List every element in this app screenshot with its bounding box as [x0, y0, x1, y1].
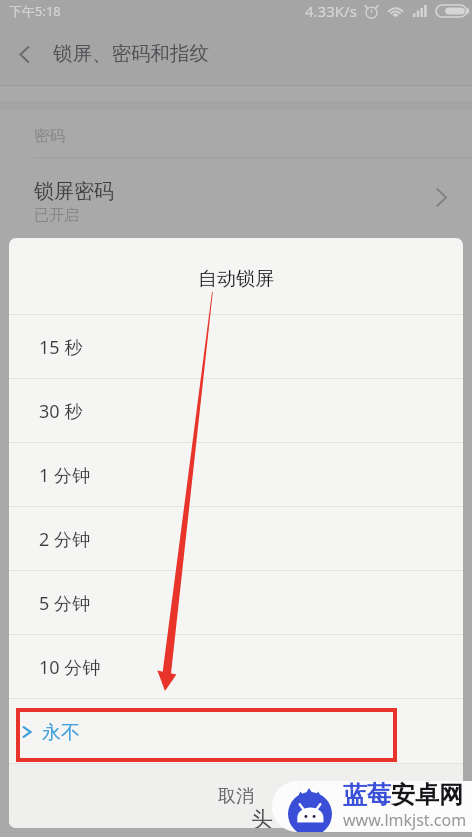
- staticText: www.lmkjst.com: [343, 809, 467, 830]
- staticText: 30 秒: [39, 399, 83, 424]
- staticText: 永不: [42, 721, 80, 745]
- staticText: 1 分钟: [39, 463, 90, 488]
- button[interactable]: 2 分钟: [9, 507, 463, 570]
- staticText: 自动锁屏: [198, 267, 274, 291]
- button[interactable]: 1 分钟: [9, 443, 463, 506]
- staticText: 头: [251, 806, 273, 828]
- button[interactable]: 取消: [9, 764, 463, 826]
- staticText: 5 分钟: [39, 591, 90, 616]
- button[interactable]: 15 秒: [9, 315, 463, 378]
- staticText: 取消: [218, 785, 254, 808]
- staticText: 密码: [34, 126, 65, 146]
- staticText: 10 分钟: [39, 655, 101, 680]
- staticText: 15 秒: [39, 335, 83, 360]
- button[interactable]: 30 秒: [9, 379, 463, 442]
- staticText: 4.33K/s: [305, 1, 357, 21]
- button[interactable]: 锁屏密码: [0, 158, 472, 240]
- button[interactable]: Back: [0, 22, 472, 85]
- staticText: 蓝莓: [343, 781, 391, 810]
- staticText: 已开启: [34, 206, 79, 225]
- staticText: 锁屏密码: [34, 179, 114, 204]
- staticText: 2 分钟: [39, 527, 90, 552]
- button[interactable]: 5 分钟: [9, 571, 463, 634]
- staticText: 锁屏、密码和指纹: [53, 41, 209, 66]
- staticText: 安卓网: [391, 781, 463, 810]
- button[interactable]: Back: [0, 30, 48, 78]
- button[interactable]: 10 分钟: [9, 635, 463, 698]
- staticText: 下午5:18: [9, 2, 61, 20]
- button[interactable]: 永不: [9, 699, 463, 763]
